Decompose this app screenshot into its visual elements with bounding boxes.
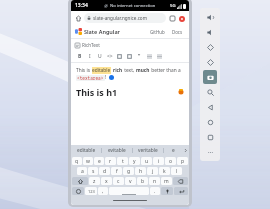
staticText: g (127, 168, 131, 175)
staticText: 123 (88, 189, 95, 194)
button[interactable]: p (177, 157, 188, 165)
button[interactable]: Format (155, 52, 164, 61)
button[interactable]: Volume down (203, 25, 217, 39)
button[interactable]: u (141, 157, 152, 165)
button[interactable]: evitable (102, 145, 132, 156)
staticText: l (176, 168, 178, 175)
button[interactable]: x (101, 177, 112, 185)
staticText: h (139, 168, 143, 175)
button[interactable]: Format (145, 52, 154, 61)
button[interactable]: e (94, 157, 104, 165)
button[interactable]: g (123, 167, 134, 175)
button[interactable]: c (113, 177, 124, 185)
button[interactable]: e (164, 145, 182, 156)
staticText: . (154, 188, 156, 195)
button[interactable]: Volume up (203, 10, 217, 24)
staticText: a (81, 168, 84, 175)
button[interactable]: , (98, 187, 108, 195)
button[interactable]: slate-angular.ngnice.com (84, 13, 166, 23)
button[interactable]: z (89, 177, 100, 185)
button[interactable]: Rotate left (203, 40, 217, 54)
staticText: v (129, 178, 132, 185)
staticText: B (78, 53, 82, 60)
staticText: editable (77, 147, 96, 154)
staticText: I (89, 53, 91, 60)
staticText: d (103, 168, 107, 175)
button[interactable]: Home (203, 115, 217, 129)
button[interactable]: q (72, 157, 82, 165)
staticText: U (98, 53, 102, 60)
staticText: , (102, 188, 104, 195)
button[interactable]: <> (105, 52, 114, 61)
button[interactable]: B (75, 52, 84, 61)
button[interactable]: Screenshot (203, 70, 217, 84)
staticText: Slate Angular (84, 28, 120, 35)
button[interactable]: Docs (170, 29, 185, 35)
button[interactable]: Rotate right (203, 55, 217, 69)
button[interactable]: k (159, 167, 170, 175)
button[interactable]: v (125, 177, 136, 185)
staticText: rich (113, 67, 123, 74)
staticText: evitable (108, 147, 126, 154)
staticText: ! (105, 74, 107, 81)
staticText: veritable (138, 147, 158, 154)
button[interactable]: RichText (75, 41, 100, 49)
button[interactable]: a (77, 167, 87, 175)
button[interactable]: t (117, 157, 128, 165)
staticText: z (93, 178, 96, 185)
staticText: e (172, 147, 175, 154)
button[interactable]: veritable (133, 145, 163, 156)
staticText: No internet connection (110, 3, 156, 9)
button[interactable]: editable (71, 145, 101, 156)
button[interactable]: shift (72, 177, 88, 185)
button[interactable]: n (149, 177, 160, 185)
button[interactable]: Zoom (203, 85, 217, 99)
staticText: 13:34 (75, 2, 88, 9)
button[interactable] (109, 187, 149, 195)
button[interactable]: More suggestions (182, 145, 189, 156)
button[interactable]: del (173, 177, 188, 185)
button[interactable]: o (165, 157, 176, 165)
button[interactable]: mic (161, 187, 173, 195)
staticText: much (136, 67, 150, 74)
button[interactable]: m (161, 177, 172, 185)
button[interactable]: GitHub (148, 29, 167, 35)
staticText: u (145, 158, 149, 165)
button[interactable]: I (85, 52, 94, 61)
button[interactable]: Tabs (168, 14, 177, 23)
staticText: j (152, 168, 154, 175)
button[interactable]: b (137, 177, 148, 185)
staticText: r (109, 158, 112, 165)
button[interactable]: . (150, 187, 160, 195)
button[interactable]: d (99, 167, 110, 175)
staticText: slate-angular.ngnice.com (93, 15, 147, 21)
button[interactable]: f (111, 167, 122, 175)
button[interactable]: U (95, 52, 104, 61)
button[interactable]: " (135, 52, 144, 61)
button[interactable]: 123 (85, 187, 97, 195)
button[interactable]: Home (74, 14, 83, 23)
staticText: n (153, 178, 157, 185)
button[interactable]: enter (174, 187, 188, 195)
button[interactable]: h (135, 167, 146, 175)
button[interactable]: More (203, 145, 217, 159)
button[interactable]: Back (203, 100, 217, 114)
button[interactable]: Overview (203, 130, 217, 144)
staticText: b (141, 178, 145, 185)
button[interactable]: Menu (177, 14, 186, 23)
button[interactable]: w (83, 157, 93, 165)
button[interactable]: l (171, 167, 182, 175)
button[interactable]: i (153, 157, 164, 165)
button[interactable]: Format (115, 52, 124, 61)
staticText: RichText (82, 42, 100, 48)
button[interactable]: j (147, 167, 158, 175)
button[interactable]: y (129, 157, 140, 165)
button[interactable]: r (105, 157, 116, 165)
button[interactable]: emoji (72, 187, 84, 195)
staticText: y (133, 158, 136, 165)
button[interactable]: s (88, 167, 98, 175)
staticText: <> (107, 53, 113, 60)
button[interactable]: Format (125, 52, 134, 61)
staticText: <textarea> (77, 75, 104, 81)
staticText: s (92, 168, 95, 175)
